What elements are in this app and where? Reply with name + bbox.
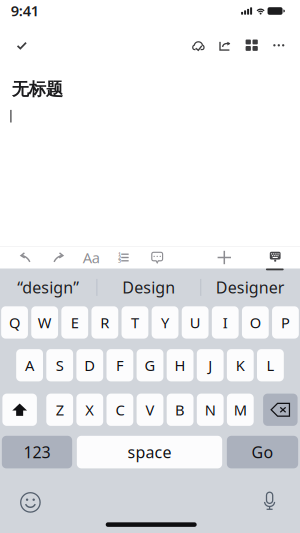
button[interactable]: Comment: [142, 247, 172, 268]
staticText: Go: [251, 441, 273, 463]
staticText: W: [38, 313, 52, 332]
button[interactable]: C: [106, 394, 133, 426]
button[interactable]: Hide keyboard: [260, 246, 290, 268]
button[interactable]: I: [212, 306, 239, 339]
button[interactable]: Share: [211, 31, 239, 61]
staticText: F: [116, 355, 124, 375]
staticText: space: [127, 441, 171, 463]
button[interactable]: Done: [5, 31, 39, 61]
button[interactable]: B: [167, 394, 193, 426]
staticText: O: [250, 313, 261, 332]
button[interactable]: Emoji keyboard: [14, 488, 46, 516]
button[interactable]: Sync status: [184, 30, 212, 60]
staticText: J: [208, 355, 212, 375]
staticText: X: [85, 400, 94, 419]
staticText: 123: [23, 441, 50, 463]
button[interactable]: Redo: [44, 246, 74, 268]
staticText: “design”: [17, 277, 79, 298]
staticText: 9:41: [11, 1, 39, 20]
staticText: E: [71, 313, 79, 332]
button[interactable]: H: [167, 349, 193, 381]
button[interactable]: S: [46, 349, 73, 381]
button[interactable]: E: [61, 306, 88, 339]
staticText: P: [281, 313, 290, 332]
staticText: G: [144, 355, 155, 375]
staticText: V: [145, 400, 154, 419]
button[interactable]: K: [227, 349, 254, 381]
staticText: T: [131, 313, 139, 332]
staticText: C: [115, 400, 124, 419]
button[interactable]: Insert: [209, 247, 239, 268]
button[interactable]: V: [137, 394, 163, 426]
button[interactable]: A: [16, 349, 43, 381]
staticText: D: [84, 355, 95, 375]
button[interactable]: More: [266, 30, 292, 60]
button[interactable]: G: [137, 349, 163, 381]
button[interactable]: Design: [98, 268, 200, 306]
button[interactable]: Shift: [2, 394, 37, 426]
staticText: N: [205, 400, 216, 419]
staticText: Q: [9, 313, 20, 332]
staticText: H: [175, 355, 186, 375]
staticText: 1: [118, 251, 121, 258]
staticText: M: [234, 400, 247, 419]
staticText: R: [100, 313, 109, 332]
staticText: S: [56, 355, 64, 375]
staticText: U: [190, 313, 201, 332]
button[interactable]: N: [197, 394, 224, 426]
button[interactable]: Y: [152, 306, 178, 339]
staticText: Aa: [83, 248, 100, 267]
button[interactable]: Q: [1, 306, 28, 339]
button[interactable]: P: [272, 306, 299, 339]
button[interactable]: Z: [46, 394, 73, 426]
button[interactable]: View options: [238, 30, 266, 60]
staticText: 无标题: [12, 79, 63, 100]
staticText: Design: [122, 277, 175, 298]
button[interactable]: X: [76, 394, 103, 426]
staticText: I: [223, 313, 228, 332]
staticText: Z: [56, 400, 64, 419]
button[interactable]: T: [121, 306, 148, 339]
button[interactable]: L: [257, 349, 284, 381]
button[interactable]: R: [91, 306, 118, 339]
staticText: Designer: [216, 277, 285, 298]
button[interactable]: J: [197, 349, 224, 381]
button[interactable]: U: [182, 306, 208, 339]
button[interactable]: W: [31, 306, 58, 339]
button[interactable]: Dictate: [254, 488, 286, 516]
staticText: K: [236, 355, 245, 375]
button[interactable]: Undo: [10, 246, 40, 268]
staticText: B: [175, 400, 185, 419]
button[interactable]: Go: [227, 436, 298, 468]
button[interactable]: Format text: [76, 247, 106, 268]
button[interactable]: “design”: [0, 268, 96, 306]
button[interactable]: D: [76, 349, 103, 381]
button[interactable]: Delete: [263, 394, 298, 426]
button[interactable]: F: [106, 349, 133, 381]
staticText: 3: [118, 257, 121, 264]
button[interactable]: Lists: [108, 247, 138, 268]
button[interactable]: space: [77, 436, 222, 468]
button[interactable]: Designer: [202, 268, 298, 306]
button[interactable]: O: [242, 306, 269, 339]
button[interactable]: 123: [2, 436, 72, 468]
staticText: A: [25, 355, 34, 375]
staticText: Y: [161, 313, 169, 332]
staticText: 2: [118, 254, 121, 261]
button[interactable]: M: [227, 394, 254, 426]
staticText: L: [266, 355, 274, 375]
